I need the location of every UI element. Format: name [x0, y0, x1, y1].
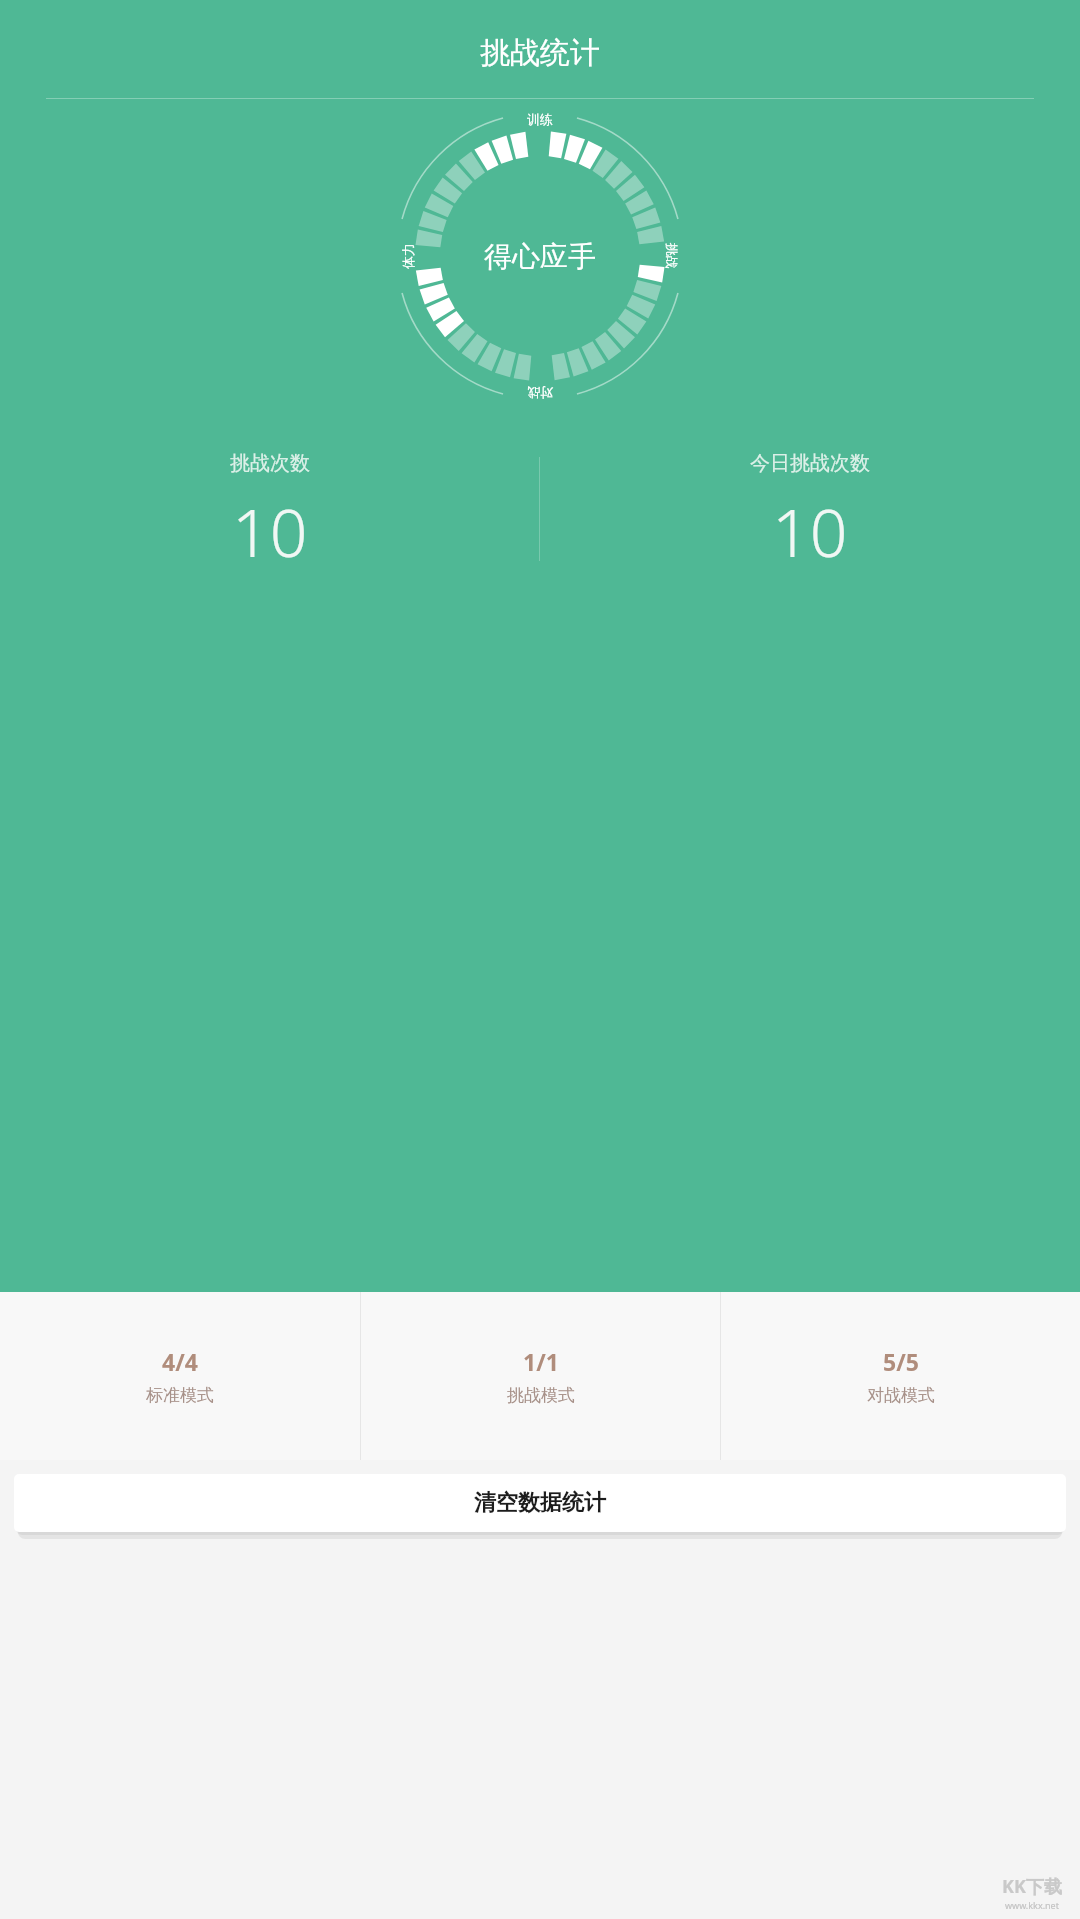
staticText: KK下载	[1002, 1874, 1062, 1899]
staticText: 10	[232, 486, 308, 576]
staticText: 标准模式	[146, 1385, 214, 1406]
staticText: 挑战模式	[507, 1385, 575, 1406]
staticText: 清空数据统计	[474, 1489, 606, 1517]
button[interactable]: 4/4	[0, 1292, 360, 1460]
staticText: 挑战	[664, 243, 680, 269]
staticText: 体力	[400, 243, 416, 269]
button[interactable]: 5/5	[721, 1292, 1080, 1460]
staticText: 得心应手	[484, 239, 596, 274]
button[interactable]: 1/1	[361, 1292, 720, 1460]
staticText: 训练	[527, 111, 553, 127]
staticText: 挑战统计	[480, 34, 600, 72]
staticText: www.kkx.net	[1005, 1899, 1059, 1911]
staticText: 挑战次数	[230, 451, 310, 476]
staticText: 对战模式	[867, 1385, 935, 1406]
staticText: 对战	[527, 385, 553, 401]
button[interactable]: 清空数据统计	[14, 1474, 1066, 1532]
staticText: 今日挑战次数	[750, 451, 870, 476]
staticText: 10	[772, 486, 848, 576]
staticText: 4/4	[162, 1346, 198, 1377]
staticText: 5/5	[883, 1346, 919, 1377]
staticText: 1/1	[523, 1346, 559, 1377]
